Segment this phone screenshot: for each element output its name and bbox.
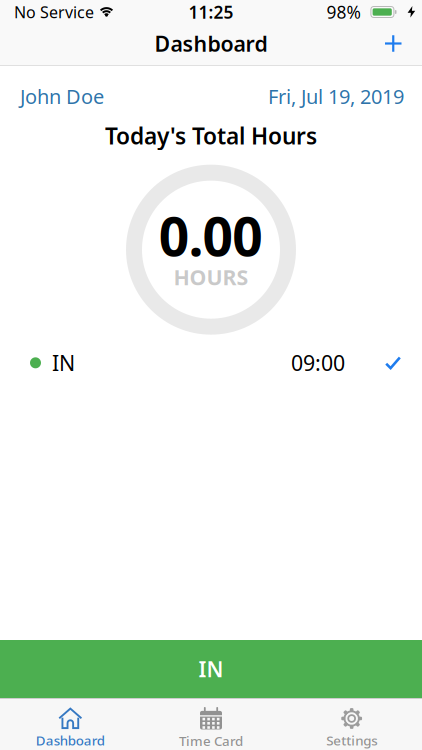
staticText: Dashboard xyxy=(36,731,105,749)
button[interactable]: Settings xyxy=(281,707,422,749)
staticText: Dashboard xyxy=(154,29,267,58)
button[interactable]: IN xyxy=(0,349,422,377)
staticText: 09:00 xyxy=(291,349,345,377)
button[interactable]: Time Card xyxy=(141,707,281,750)
staticText: 0.00 xyxy=(159,200,263,271)
staticText: 98% xyxy=(326,0,360,23)
staticText: IN xyxy=(198,655,223,683)
staticText: HOURS xyxy=(173,263,248,291)
staticText: 11:25 xyxy=(188,0,233,23)
staticText: IN xyxy=(52,349,75,377)
staticText: No Service xyxy=(14,1,94,23)
button[interactable]: Dashboard xyxy=(0,707,141,749)
staticText: Settings xyxy=(326,731,377,749)
staticText: Fri, Jul 19, 2019 xyxy=(268,83,404,110)
staticText: John Doe xyxy=(20,83,104,110)
staticText: Time Card xyxy=(179,732,243,750)
button[interactable]: Add xyxy=(384,35,422,52)
button[interactable]: IN xyxy=(0,640,422,698)
staticText: Today's Total Hours xyxy=(105,121,317,151)
